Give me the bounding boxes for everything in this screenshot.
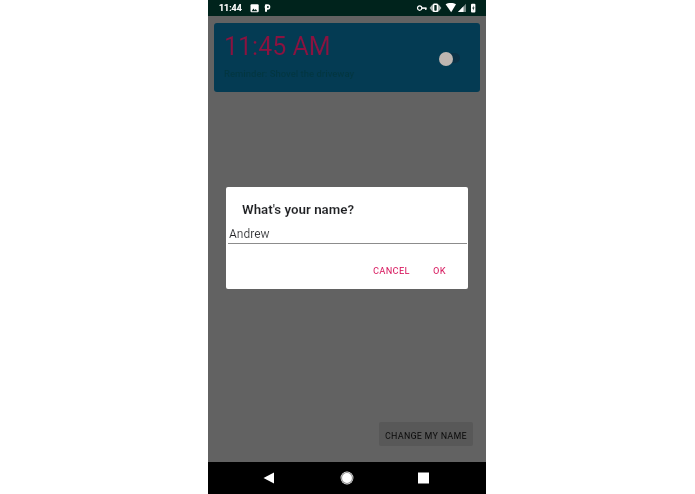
staticText: Reminder: Shovel the driveway [224,68,355,79]
button[interactable]: CHANGE MY NAME [379,422,473,446]
staticText: 11:45 AM [224,32,331,61]
staticText: 11:44 [219,3,242,14]
button[interactable]: Toggle alarm [432,45,468,70]
staticText: OK [433,265,446,276]
staticText: Andrew [229,227,270,241]
button[interactable]: OK [425,259,454,281]
button[interactable]: 11:45 AM [214,23,480,92]
staticText: CHANGE MY NAME [385,431,467,442]
staticText: CANCEL [373,265,410,276]
button[interactable]: CANCEL [365,259,418,281]
staticText: What's your name? [242,202,355,218]
